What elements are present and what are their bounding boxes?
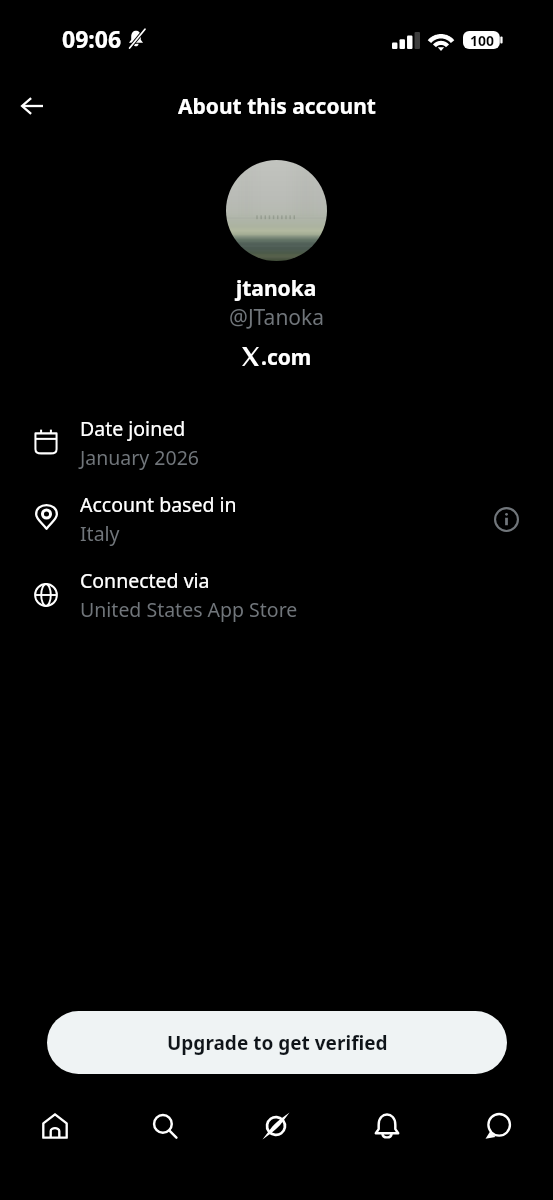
button[interactable]: Account based in: [0, 481, 553, 557]
button[interactable]: Home: [0, 1098, 110, 1154]
button[interactable]: Upgrade to get verified: [47, 1011, 507, 1074]
button[interactable]: Notifications: [331, 1098, 442, 1154]
staticText: .com: [261, 343, 312, 372]
staticText: Connected via: [80, 567, 210, 594]
staticText: @JTanoka: [229, 303, 325, 332]
button[interactable]: Date joined: [0, 405, 553, 481]
staticText: Date joined: [80, 415, 186, 442]
staticText: Italy: [80, 520, 120, 547]
button[interactable]: Grok: [220, 1098, 331, 1154]
staticText: 100: [470, 31, 495, 49]
button[interactable]: Back: [10, 84, 54, 128]
button[interactable]: Search: [110, 1098, 220, 1154]
button[interactable]: More info: [486, 499, 526, 539]
staticText: jtanoka: [236, 274, 317, 303]
staticText: January 2026: [80, 444, 199, 471]
staticText: United States App Store: [80, 596, 298, 623]
staticText: 09:06: [62, 23, 122, 54]
staticText: Upgrade to get verified: [167, 1030, 388, 1056]
button[interactable]: Messages: [442, 1098, 553, 1154]
button[interactable]: Connected via: [0, 557, 553, 633]
staticText: About this account: [178, 92, 376, 121]
staticText: Account based in: [80, 491, 237, 518]
